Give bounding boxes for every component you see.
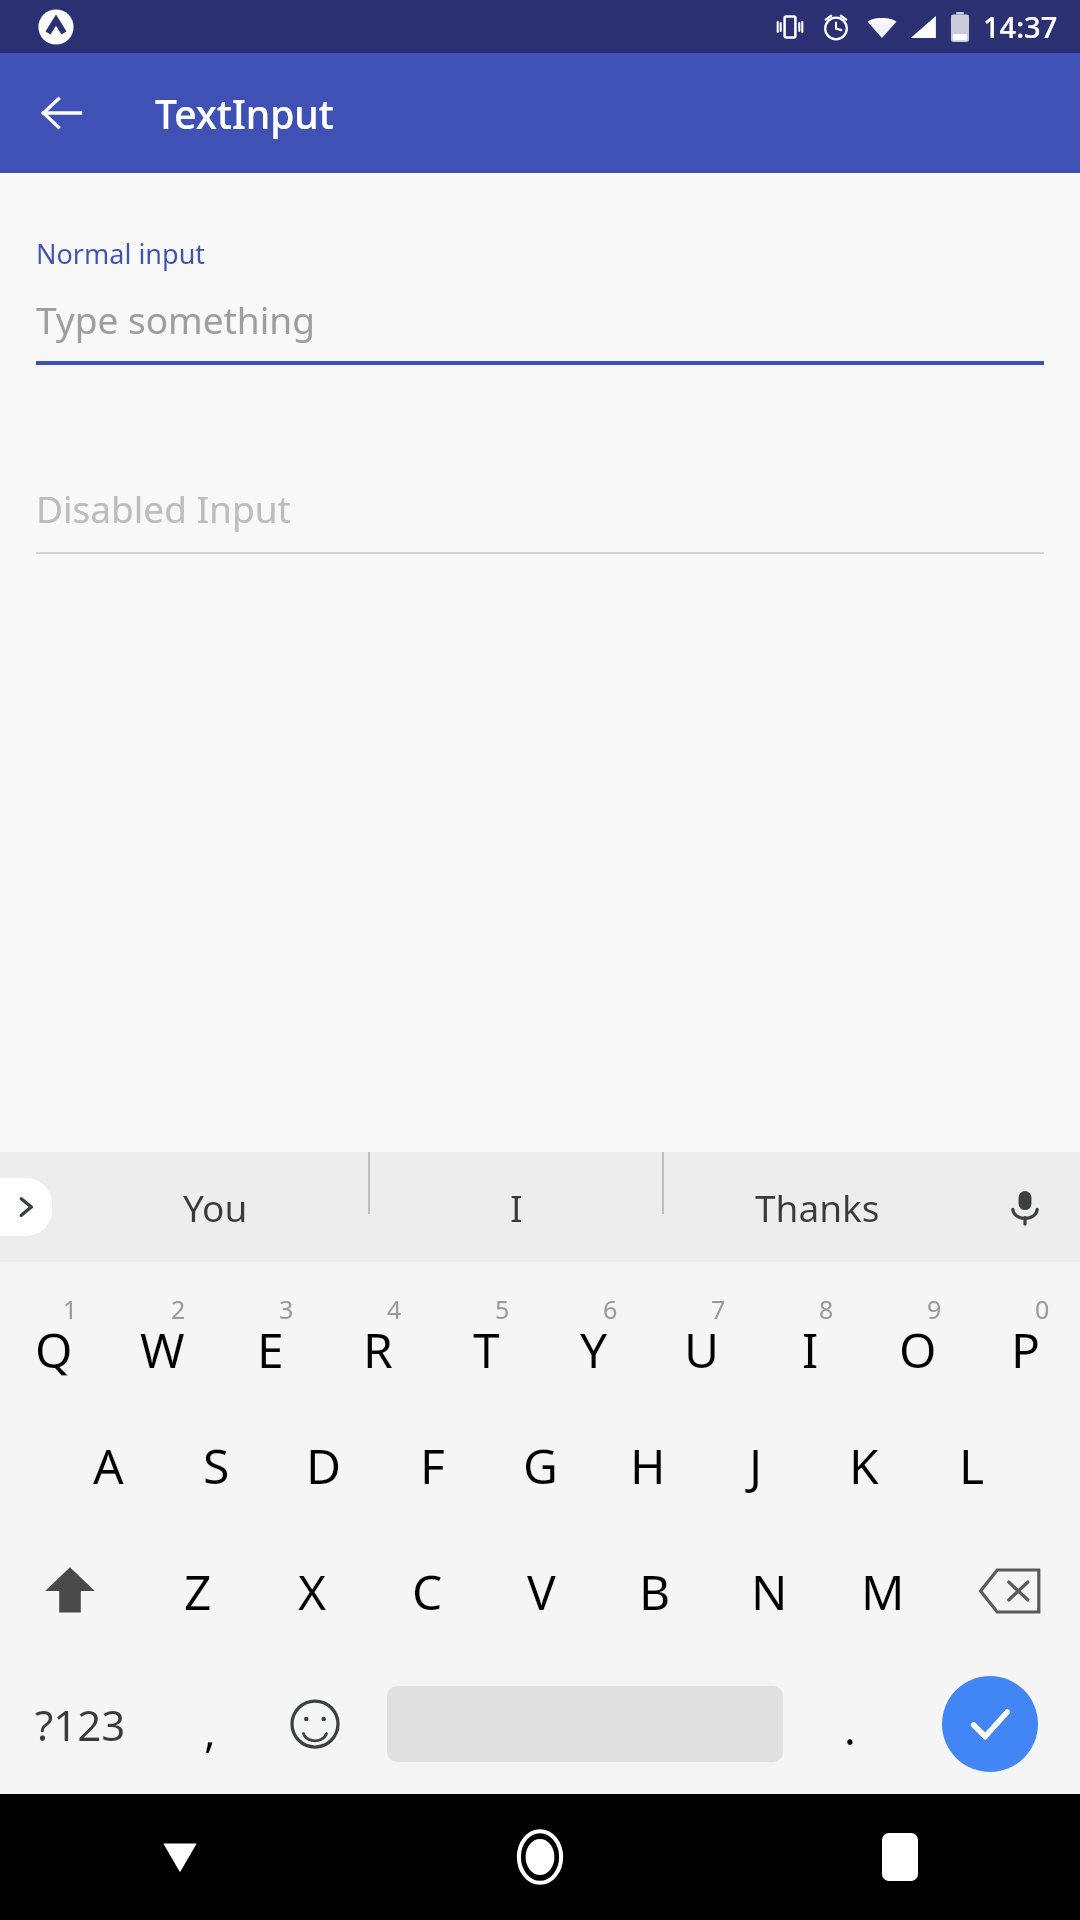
button[interactable]: 0: [972, 1276, 1080, 1402]
button[interactable]: Thanks: [664, 1152, 970, 1262]
staticText: You: [183, 1182, 248, 1232]
staticText: E: [257, 1317, 284, 1382]
button[interactable]: Hide keyboard: [0, 1794, 360, 1920]
staticText: 2: [171, 1292, 186, 1326]
button[interactable]: 7: [648, 1276, 756, 1402]
button[interactable]: 3: [216, 1276, 324, 1402]
button[interactable]: H: [594, 1402, 702, 1528]
button[interactable]: K: [810, 1402, 918, 1528]
button[interactable]: 1: [0, 1276, 108, 1402]
staticText: I: [802, 1317, 819, 1382]
staticText: S: [203, 1433, 230, 1498]
button[interactable]: Emoji: [260, 1654, 370, 1794]
staticText: Normal input: [36, 235, 206, 272]
button[interactable]: M: [826, 1528, 940, 1654]
button[interactable]: B: [598, 1528, 712, 1654]
staticText: 8: [819, 1292, 834, 1326]
staticText: G: [523, 1433, 558, 1498]
staticText: 9: [927, 1292, 942, 1326]
button[interactable]: S: [162, 1402, 270, 1528]
staticText: Type something: [36, 294, 315, 344]
staticText: ?123: [35, 1696, 126, 1753]
button[interactable]: A: [54, 1402, 162, 1528]
button[interactable]: 5: [432, 1276, 540, 1402]
button[interactable]: V: [484, 1528, 598, 1654]
button[interactable]: Backspace: [940, 1528, 1080, 1654]
staticText: L: [959, 1433, 985, 1498]
button[interactable]: Recents: [720, 1794, 1080, 1920]
staticText: H: [630, 1433, 666, 1498]
button[interactable]: I: [370, 1152, 662, 1262]
staticText: F: [420, 1433, 445, 1498]
staticText: TextInput: [155, 87, 334, 140]
button[interactable]: ?123: [0, 1654, 160, 1794]
button[interactable]: Disabled Input: [36, 483, 1044, 554]
staticText: P: [1011, 1317, 1041, 1382]
button[interactable]: Voice input: [970, 1152, 1080, 1262]
button[interactable]: L: [918, 1402, 1026, 1528]
button[interactable]: 9: [864, 1276, 972, 1402]
button[interactable]: You: [62, 1152, 368, 1262]
staticText: K: [849, 1433, 879, 1498]
button[interactable]: 8: [756, 1276, 864, 1402]
button[interactable]: Enter: [900, 1654, 1080, 1794]
staticText: R: [363, 1317, 393, 1382]
staticText: Z: [184, 1559, 212, 1624]
staticText: 1: [63, 1292, 78, 1326]
button[interactable]: 4: [324, 1276, 432, 1402]
staticText: Disabled Input: [36, 483, 291, 533]
button[interactable]: N: [712, 1528, 826, 1654]
staticText: C: [412, 1559, 443, 1624]
button[interactable]: 2: [108, 1276, 216, 1402]
staticText: Thanks: [755, 1182, 880, 1232]
button[interactable]: Home: [360, 1794, 720, 1920]
button[interactable]: G: [486, 1402, 594, 1528]
button[interactable]: Normal input: [36, 235, 1044, 365]
button[interactable]: Z: [140, 1528, 255, 1654]
button[interactable]: ,: [160, 1654, 260, 1794]
staticText: D: [306, 1433, 342, 1498]
button[interactable]: More suggestions: [0, 1178, 52, 1236]
staticText: 4: [387, 1292, 402, 1326]
staticText: U: [684, 1317, 720, 1382]
staticText: T: [473, 1317, 500, 1382]
button[interactable]: D: [270, 1402, 378, 1528]
staticText: N: [751, 1559, 788, 1624]
staticText: 0: [1035, 1292, 1050, 1326]
staticText: W: [140, 1317, 185, 1382]
button[interactable]: C: [370, 1528, 484, 1654]
button[interactable]: J: [702, 1402, 810, 1528]
button[interactable]: 6: [540, 1276, 648, 1402]
button[interactable]: X: [255, 1528, 370, 1654]
staticText: 5: [495, 1292, 510, 1326]
staticText: X: [298, 1559, 327, 1624]
staticText: 6: [603, 1292, 618, 1326]
staticText: 7: [711, 1292, 726, 1326]
staticText: V: [527, 1559, 556, 1624]
button[interactable]: Shift: [0, 1528, 140, 1654]
staticText: O: [899, 1317, 937, 1382]
staticText: ,: [204, 1700, 216, 1760]
button[interactable]: Space: [370, 1654, 800, 1794]
staticText: M: [861, 1559, 905, 1624]
button[interactable]: .: [800, 1654, 900, 1794]
staticText: Q: [35, 1317, 73, 1382]
staticText: Y: [580, 1317, 608, 1382]
staticText: J: [749, 1433, 763, 1498]
staticText: .: [844, 1698, 856, 1758]
staticText: A: [93, 1433, 124, 1498]
button[interactable]: F: [378, 1402, 486, 1528]
staticText: B: [639, 1559, 671, 1624]
button[interactable]: Back: [22, 73, 102, 153]
staticText: I: [510, 1182, 523, 1232]
staticText: 3: [279, 1292, 294, 1326]
staticText: 14:37: [983, 7, 1058, 46]
